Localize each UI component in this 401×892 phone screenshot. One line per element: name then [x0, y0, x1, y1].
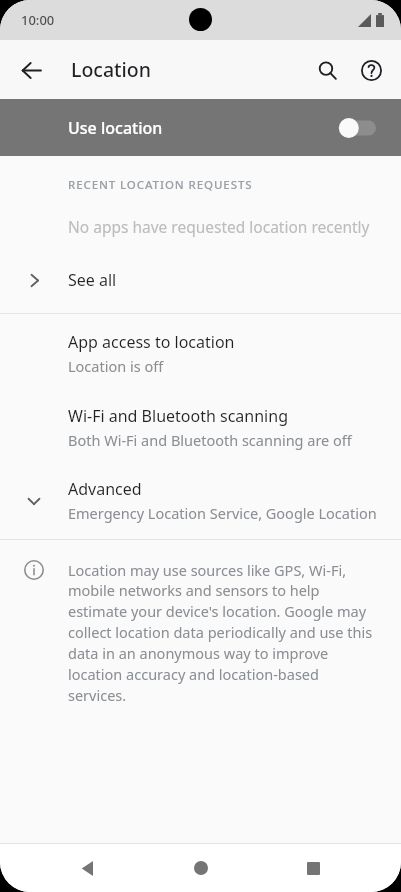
- staticText: Location is off: [68, 356, 164, 376]
- staticText: No apps have requested location recently: [68, 216, 370, 237]
- button[interactable]: Home: [177, 844, 225, 892]
- button[interactable]: Recent apps: [289, 844, 337, 892]
- staticText: Both Wi-Fi and Bluetooth scanning are of…: [68, 430, 352, 450]
- button[interactable]: Wi-Fi and Bluetooth scanning: [0, 391, 401, 464]
- button[interactable]: Back: [64, 844, 112, 892]
- staticText: Advanced: [68, 478, 142, 500]
- button[interactable]: Search: [305, 48, 349, 92]
- staticText: Location: [71, 56, 151, 83]
- staticText: RECENT LOCATION REQUESTS: [68, 177, 253, 193]
- staticText: Location may use sources like GPS, Wi-Fi…: [68, 560, 379, 706]
- staticText: 10:00: [21, 11, 55, 29]
- staticText: Emergency Location Service, Google Locat…: [68, 503, 391, 523]
- staticText: Wi-Fi and Bluetooth scanning: [68, 405, 288, 427]
- button[interactable]: Help: [349, 48, 393, 92]
- button[interactable]: App access to location: [0, 314, 401, 391]
- staticText: Use location: [68, 117, 339, 139]
- button[interactable]: See all: [0, 261, 401, 299]
- button[interactable]: Navigate up: [8, 47, 54, 93]
- staticText: See all: [68, 269, 117, 291]
- button[interactable]: Advanced: [0, 464, 401, 539]
- staticText: App access to location: [68, 331, 235, 353]
- button[interactable]: Use location: [0, 99, 401, 156]
